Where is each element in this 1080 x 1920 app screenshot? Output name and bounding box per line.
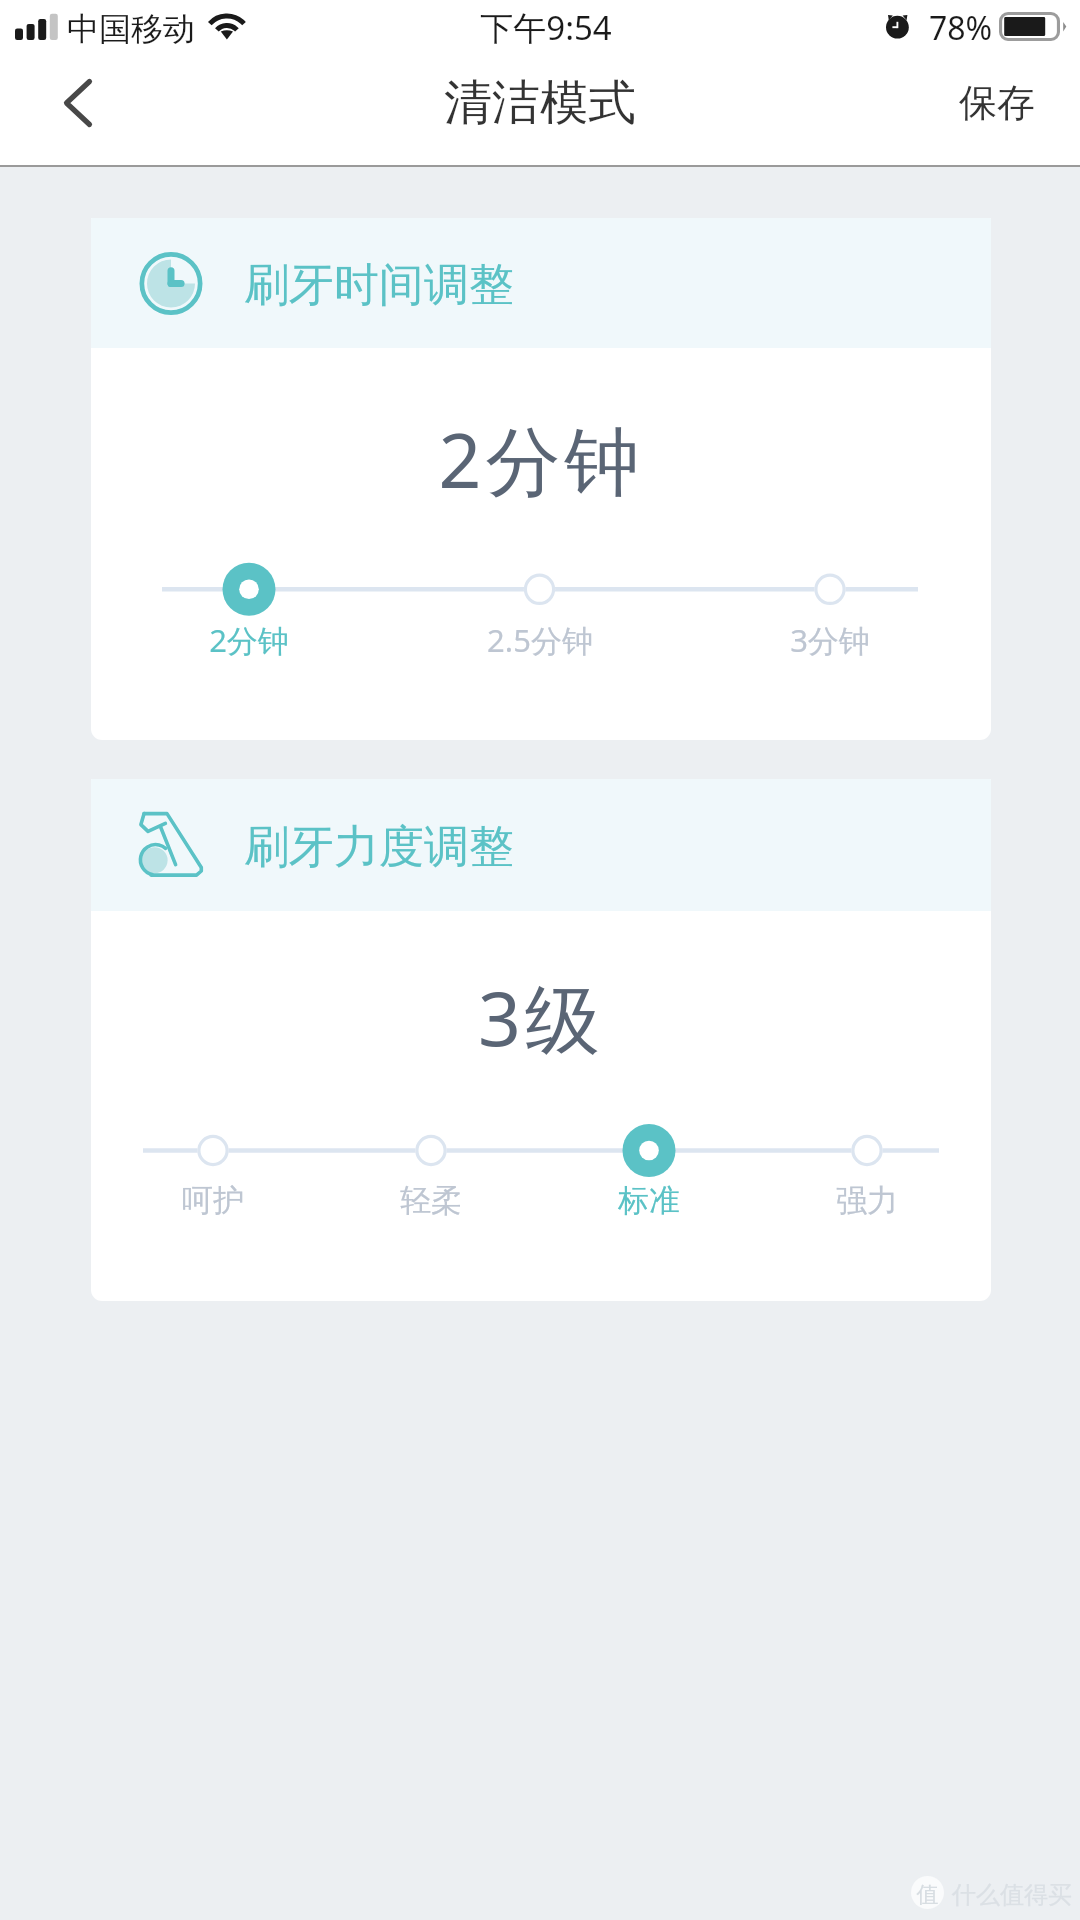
button[interactable]: 强力 xyxy=(758,1117,976,1219)
staticText: 78% xyxy=(929,6,993,50)
button[interactable]: 轻柔 xyxy=(322,1117,540,1219)
staticText: 2分钟 xyxy=(139,619,359,661)
staticText: 呵护 xyxy=(104,1181,322,1220)
staticText: 2分钟 xyxy=(91,408,991,510)
button[interactable]: 呵护 xyxy=(104,1117,322,1219)
button[interactable]: 3分钟 xyxy=(720,555,940,657)
staticText: 强力 xyxy=(758,1181,976,1220)
button[interactable]: 标准 xyxy=(540,1117,758,1219)
staticText: 刷牙力度调整 xyxy=(244,819,514,876)
staticText: 3级 xyxy=(91,966,991,1068)
button[interactable]: Back xyxy=(23,50,133,155)
staticText: 2.5分钟 xyxy=(430,619,650,661)
button[interactable]: 2分钟 xyxy=(139,555,359,657)
staticText: 刷牙时间调整 xyxy=(244,257,514,314)
staticText: 轻柔 xyxy=(322,1181,540,1220)
staticText: 值 xyxy=(916,1881,939,1909)
button[interactable]: 保存 xyxy=(920,50,1080,155)
staticText: 标准 xyxy=(540,1181,758,1220)
button[interactable]: 2.5分钟 xyxy=(430,555,650,657)
staticText: 清洁模式 xyxy=(0,73,1080,133)
staticText: 下午9:54 xyxy=(6,5,1080,50)
staticText: 中国移动 xyxy=(67,9,195,49)
staticText: 保存 xyxy=(959,79,1035,127)
staticText: 3分钟 xyxy=(720,619,940,661)
staticText: 什么值得买 xyxy=(952,1880,1072,1910)
